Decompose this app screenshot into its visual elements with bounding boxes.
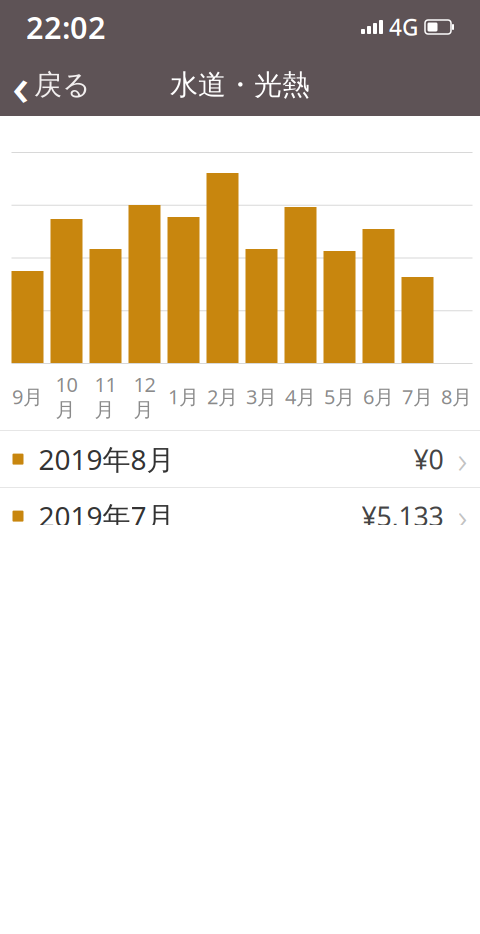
button[interactable]: 2019年7月 <box>0 488 480 545</box>
staticText: ¥0 <box>413 441 443 477</box>
staticText: 4月 <box>285 383 316 410</box>
staticText: 2019年8月 <box>38 440 174 478</box>
staticText: › <box>457 434 467 484</box>
staticText: 12月 <box>133 371 155 422</box>
staticText: 5月 <box>324 383 355 410</box>
staticText: 10月 <box>55 371 77 422</box>
staticText: 4G <box>389 12 418 42</box>
staticText: › <box>457 491 467 541</box>
staticText: 9月 <box>12 383 43 410</box>
staticText: 水道・光熱 <box>170 68 310 102</box>
staticText: 1月 <box>168 383 199 410</box>
staticText: ‹ <box>12 50 29 120</box>
staticText: 11月 <box>94 371 116 422</box>
staticText: 8月 <box>441 383 472 410</box>
staticText: 戻る <box>34 68 91 102</box>
staticText: 6月 <box>363 383 394 410</box>
staticText: 2019年7月 <box>38 497 174 535</box>
staticText: 22:02 <box>26 7 106 47</box>
button[interactable]: 2019年8月 <box>0 431 480 488</box>
staticText: 7月 <box>402 383 433 410</box>
staticText: 2月 <box>207 383 238 410</box>
button[interactable]: ‹ <box>0 60 103 110</box>
staticText: ¥5,133 <box>361 498 443 534</box>
staticText: 3月 <box>246 383 277 410</box>
